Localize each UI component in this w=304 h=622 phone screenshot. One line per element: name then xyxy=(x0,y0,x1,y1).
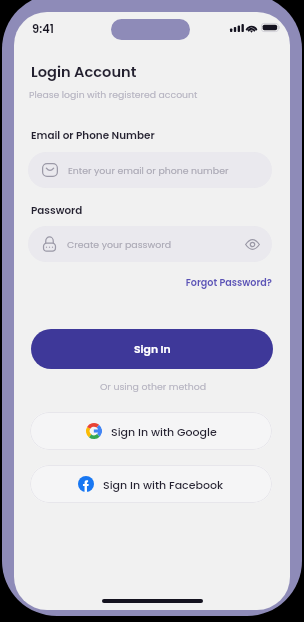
staticText: Login Account xyxy=(31,62,137,82)
other: Wi-Fi xyxy=(246,24,257,32)
button[interactable]: Sign In with Facebook xyxy=(30,465,272,503)
button[interactable]: Create your password xyxy=(28,226,272,262)
button[interactable]: Sign In xyxy=(31,329,273,369)
staticText: Please login with registered account xyxy=(29,88,198,101)
button[interactable]: Sign In with Google xyxy=(30,412,272,450)
button[interactable]: Forgot Password? xyxy=(120,276,272,289)
staticText: Forgot Password? xyxy=(120,276,272,289)
staticText: Sign In with Google xyxy=(111,424,217,439)
staticText: Sign In with Facebook xyxy=(103,477,224,492)
staticText: Or using other method xyxy=(53,380,253,393)
staticText: Enter your email or phone number xyxy=(68,164,229,177)
staticText: Email or Phone Number xyxy=(31,128,155,143)
button[interactable]: Enter your email or phone number xyxy=(28,152,272,188)
staticText: Sign In xyxy=(134,342,171,357)
button[interactable]: Show password xyxy=(243,235,261,253)
staticText: 9:41 xyxy=(32,21,54,37)
other: Cellular signal xyxy=(230,24,244,32)
other: Battery xyxy=(261,23,280,32)
staticText: Password xyxy=(31,203,83,218)
staticText: Create your password xyxy=(67,238,172,251)
